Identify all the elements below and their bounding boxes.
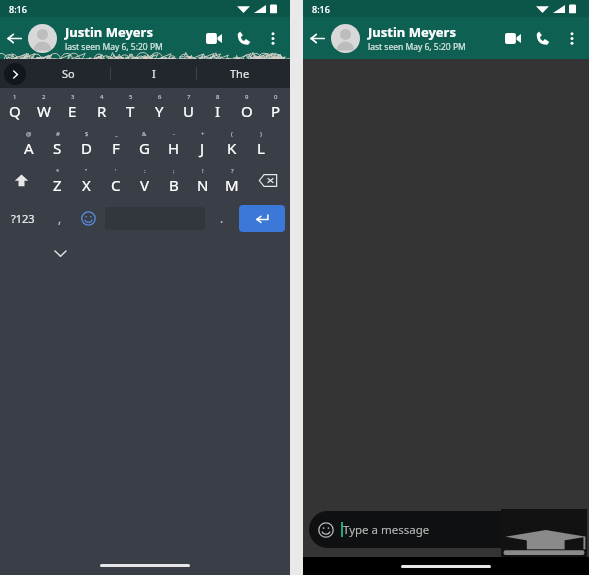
- button[interactable]: 7: [174, 88, 203, 125]
- staticText: last seen May 6, 5:20 PM: [65, 41, 163, 53]
- button[interactable]: Voice call: [229, 23, 259, 53]
- staticText: 4: [100, 93, 104, 101]
- button[interactable]: .: [207, 199, 236, 237]
- staticText: #: [56, 130, 60, 138]
- staticText: $: [85, 130, 89, 138]
- button[interactable]: Emoji: [74, 199, 103, 237]
- staticText: O: [241, 101, 253, 121]
- button[interactable]: _: [101, 125, 130, 162]
- staticText: ,: [58, 210, 62, 226]
- button[interactable]: Shift: [0, 162, 43, 199]
- button[interactable]: Back: [0, 24, 28, 52]
- staticText: Z: [53, 175, 62, 195]
- staticText: ;: [173, 167, 175, 175]
- staticText: 6: [158, 93, 162, 101]
- button[interactable]: So: [26, 59, 110, 88]
- staticText: H: [168, 138, 180, 158]
- staticText: C: [111, 175, 121, 195]
- button[interactable]: @: [14, 125, 43, 162]
- staticText: :: [144, 167, 146, 175]
- button[interactable]: 2: [29, 88, 58, 125]
- button[interactable]: More options: [558, 24, 586, 52]
- staticText: ": [85, 167, 88, 175]
- button[interactable]: #: [43, 125, 72, 162]
- staticText: ': [115, 167, 117, 175]
- button[interactable]: Profile photo: [331, 24, 360, 53]
- button[interactable]: Video call: [199, 23, 229, 53]
- button[interactable]: +: [188, 125, 217, 162]
- staticText: *: [56, 167, 60, 175]
- staticText: ?: [231, 167, 234, 175]
- staticText: last seen May 6, 5:20 PM: [368, 41, 466, 53]
- staticText: X: [82, 175, 91, 195]
- button[interactable]: Type a message: [309, 511, 583, 548]
- staticText: 3: [71, 93, 75, 101]
- staticText: J: [200, 138, 205, 158]
- button[interactable]: ?123: [0, 199, 45, 237]
- button[interactable]: -: [159, 125, 188, 162]
- staticText: 9: [245, 93, 249, 101]
- staticText: P: [271, 101, 281, 121]
- staticText: W: [37, 101, 51, 121]
- button[interactable]: 3: [58, 88, 87, 125]
- staticText: ?123: [11, 211, 35, 226]
- staticText: Justin Meyers: [65, 23, 153, 41]
- button[interactable]: (: [217, 125, 246, 162]
- button[interactable]: *: [43, 162, 72, 199]
- button[interactable]: 8: [203, 88, 232, 125]
- button[interactable]: I: [111, 59, 196, 88]
- button[interactable]: Enter: [239, 205, 285, 232]
- button[interactable]: 4: [87, 88, 116, 125]
- button[interactable]: ): [246, 125, 275, 162]
- staticText: _: [115, 130, 118, 138]
- staticText: F: [112, 138, 120, 158]
- button[interactable]: Backspace: [246, 162, 290, 199]
- button[interactable]: 0: [261, 88, 290, 125]
- staticText: Justin Meyers: [368, 23, 456, 41]
- button[interactable]: More options: [259, 24, 287, 52]
- staticText: I: [215, 101, 221, 121]
- staticText: 0: [274, 93, 278, 101]
- button[interactable]: Video call: [498, 23, 528, 53]
- button[interactable]: ;: [159, 162, 188, 199]
- staticText: A: [24, 138, 34, 158]
- staticText: S: [53, 138, 62, 158]
- staticText: -: [173, 130, 175, 138]
- button[interactable]: ': [101, 162, 130, 199]
- staticText: &: [142, 130, 147, 138]
- button[interactable]: ?: [217, 162, 246, 199]
- button[interactable]: Attach: [553, 518, 577, 542]
- button[interactable]: ": [72, 162, 101, 199]
- staticText: 5: [129, 93, 133, 101]
- button[interactable]: Back: [303, 24, 331, 52]
- staticText: V: [140, 175, 150, 195]
- staticText: 7: [187, 93, 191, 101]
- staticText: M: [225, 175, 239, 195]
- staticText: 1: [13, 93, 17, 101]
- button[interactable]: ,: [45, 199, 74, 237]
- staticText: 8:16: [312, 3, 330, 15]
- staticText: @: [26, 130, 32, 138]
- button[interactable]: $: [72, 125, 101, 162]
- staticText: So: [62, 66, 75, 81]
- staticText: N: [197, 175, 209, 195]
- staticText: 2: [42, 93, 46, 101]
- button[interactable]: Profile photo: [28, 24, 57, 53]
- button[interactable]: 5: [116, 88, 145, 125]
- button[interactable]: &: [130, 125, 159, 162]
- staticText: (: [231, 130, 233, 138]
- button[interactable]: More suggestions: [4, 63, 26, 85]
- button[interactable]: Voice call: [528, 23, 558, 53]
- button[interactable]: 1: [0, 88, 29, 125]
- button[interactable]: 6: [145, 88, 174, 125]
- button[interactable]: 9: [232, 88, 261, 125]
- button[interactable]: :: [130, 162, 159, 199]
- button[interactable]: The: [197, 59, 282, 88]
- staticText: K: [227, 138, 237, 158]
- staticText: Y: [155, 101, 164, 121]
- staticText: U: [183, 101, 194, 121]
- button[interactable]: !: [188, 162, 217, 199]
- button[interactable]: Hide keyboard: [50, 243, 70, 263]
- staticText: G: [139, 138, 150, 158]
